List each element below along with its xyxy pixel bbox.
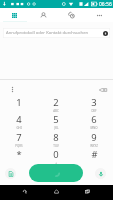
staticText: TUV bbox=[53, 144, 59, 148]
staticText: WXYZ bbox=[90, 144, 98, 148]
other: Recents bbox=[68, 12, 75, 19]
button[interactable]: 4 bbox=[0, 113, 37, 130]
staticText: 8 bbox=[53, 131, 59, 144]
staticText: DEF bbox=[91, 109, 97, 113]
staticText: 1 bbox=[16, 96, 22, 109]
staticText: 2 bbox=[53, 96, 59, 109]
staticText: 3 bbox=[91, 96, 97, 109]
staticText: JKL bbox=[54, 126, 59, 130]
button[interactable]: 0 bbox=[37, 148, 75, 165]
button[interactable]: 5 bbox=[37, 113, 75, 130]
staticText: 9 bbox=[91, 131, 97, 144]
staticText: PQRS bbox=[15, 144, 23, 148]
button[interactable]: Dialpad bbox=[0, 8, 29, 22]
button[interactable]: Contacts bbox=[29, 8, 57, 22]
staticText: * bbox=[16, 148, 22, 161]
button[interactable]: 9 bbox=[75, 131, 113, 148]
staticText: ABC bbox=[53, 109, 59, 113]
button[interactable]: 6 bbox=[75, 113, 113, 130]
staticText: # bbox=[91, 148, 98, 161]
staticText: 4 bbox=[16, 113, 22, 126]
staticText: GHI bbox=[16, 126, 22, 130]
button[interactable]: Anrufprotokoll oder Kontakt durchsuchen bbox=[3, 28, 110, 38]
other: Dialpad bbox=[12, 13, 17, 18]
button[interactable]: Home bbox=[50, 185, 63, 198]
staticText: MNO bbox=[90, 126, 98, 130]
button[interactable]: SIM selection bbox=[5, 168, 16, 179]
staticText: 0 bbox=[53, 148, 59, 161]
staticText: 6 bbox=[91, 113, 97, 126]
button[interactable]: Recents bbox=[57, 8, 85, 22]
button[interactable]: Back bbox=[18, 185, 31, 198]
button[interactable]: # bbox=[75, 148, 113, 165]
other: Contacts bbox=[40, 12, 47, 19]
staticText: 7 bbox=[16, 131, 22, 144]
staticText: 5 bbox=[53, 113, 59, 126]
button[interactable]: 1 bbox=[0, 96, 37, 113]
button[interactable]: Recents bbox=[81, 185, 94, 198]
button[interactable]: 8 bbox=[37, 131, 75, 148]
button[interactable]: More options bbox=[85, 8, 113, 22]
staticText: + bbox=[55, 161, 57, 165]
button[interactable]: 2 bbox=[37, 96, 75, 113]
button[interactable]: Menu bbox=[6, 83, 19, 96]
button[interactable]: Voice input bbox=[95, 168, 106, 179]
button[interactable]: * bbox=[0, 148, 37, 165]
button[interactable]: 7 bbox=[0, 131, 37, 148]
button[interactable]: Call bbox=[29, 164, 83, 182]
other: More options bbox=[96, 12, 103, 19]
button[interactable]: 3 bbox=[75, 96, 113, 113]
staticText: Anrufprotokoll oder Kontakt durchsuchen bbox=[6, 30, 89, 36]
staticText: 06:56 bbox=[99, 1, 112, 8]
button[interactable]: Backspace bbox=[96, 83, 109, 96]
button[interactable]: Voice search bbox=[103, 31, 108, 36]
